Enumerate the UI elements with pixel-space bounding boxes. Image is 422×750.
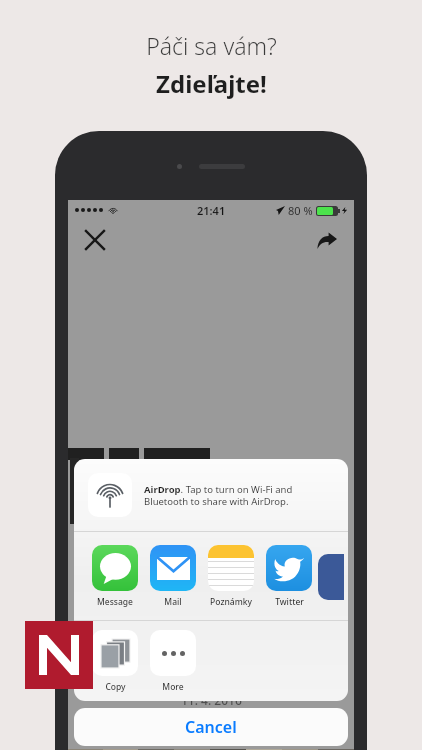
staticText: Mail bbox=[164, 596, 182, 608]
staticText: 11. 4. 2016 bbox=[181, 692, 242, 708]
button[interactable]: Twitter bbox=[260, 545, 318, 608]
staticText: Páči sa vám? bbox=[146, 30, 277, 61]
staticText: Message bbox=[97, 596, 133, 608]
button[interactable]: Copy bbox=[86, 630, 144, 693]
staticText: Poznámky bbox=[210, 596, 252, 608]
staticText: 21:41 bbox=[197, 203, 226, 218]
button[interactable]: Share bbox=[310, 223, 344, 257]
button[interactable]: AirDrop. Tap to turn on Wi-Fi and Blueto… bbox=[74, 459, 348, 531]
staticText: Copy bbox=[105, 681, 126, 693]
button[interactable]: Cancel bbox=[74, 708, 348, 746]
button[interactable]: More bbox=[144, 630, 202, 693]
staticText: Twitter bbox=[275, 596, 304, 608]
staticText: More bbox=[162, 681, 184, 693]
button[interactable]: Mail bbox=[144, 545, 202, 608]
staticText: 80 % bbox=[288, 203, 313, 218]
button[interactable]: Message bbox=[86, 545, 144, 608]
button[interactable]: Close bbox=[78, 223, 112, 257]
staticText: AirDrop. Tap to turn on Wi-Fi and Blueto… bbox=[144, 483, 334, 508]
button[interactable]: Poznámky bbox=[202, 545, 260, 608]
staticText: Zdieľajte! bbox=[156, 67, 267, 100]
staticText: Cancel bbox=[185, 716, 237, 738]
